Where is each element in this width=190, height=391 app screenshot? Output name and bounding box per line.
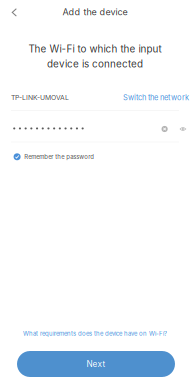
staticText: Add the device	[62, 6, 127, 17]
staticText: Remember the password	[24, 153, 94, 160]
button[interactable]: Clear	[159, 123, 171, 135]
staticText: device is connected	[47, 58, 143, 70]
button[interactable]: Show password	[177, 123, 189, 135]
button[interactable]: Back	[4, 2, 24, 22]
button[interactable]: Next	[17, 351, 175, 377]
staticText: What requirements does the device have o…	[23, 330, 167, 337]
staticText: Next	[86, 359, 105, 369]
button[interactable]: Switch the network	[123, 93, 189, 102]
staticText: TP-LINK-UMOVAL	[11, 93, 69, 102]
button[interactable]: What requirements does the device have o…	[0, 330, 190, 337]
staticText: Switch the network	[123, 93, 189, 102]
staticText: The Wi-Fi to which the input	[28, 43, 161, 55]
button[interactable]: Remember the password	[14, 153, 94, 160]
